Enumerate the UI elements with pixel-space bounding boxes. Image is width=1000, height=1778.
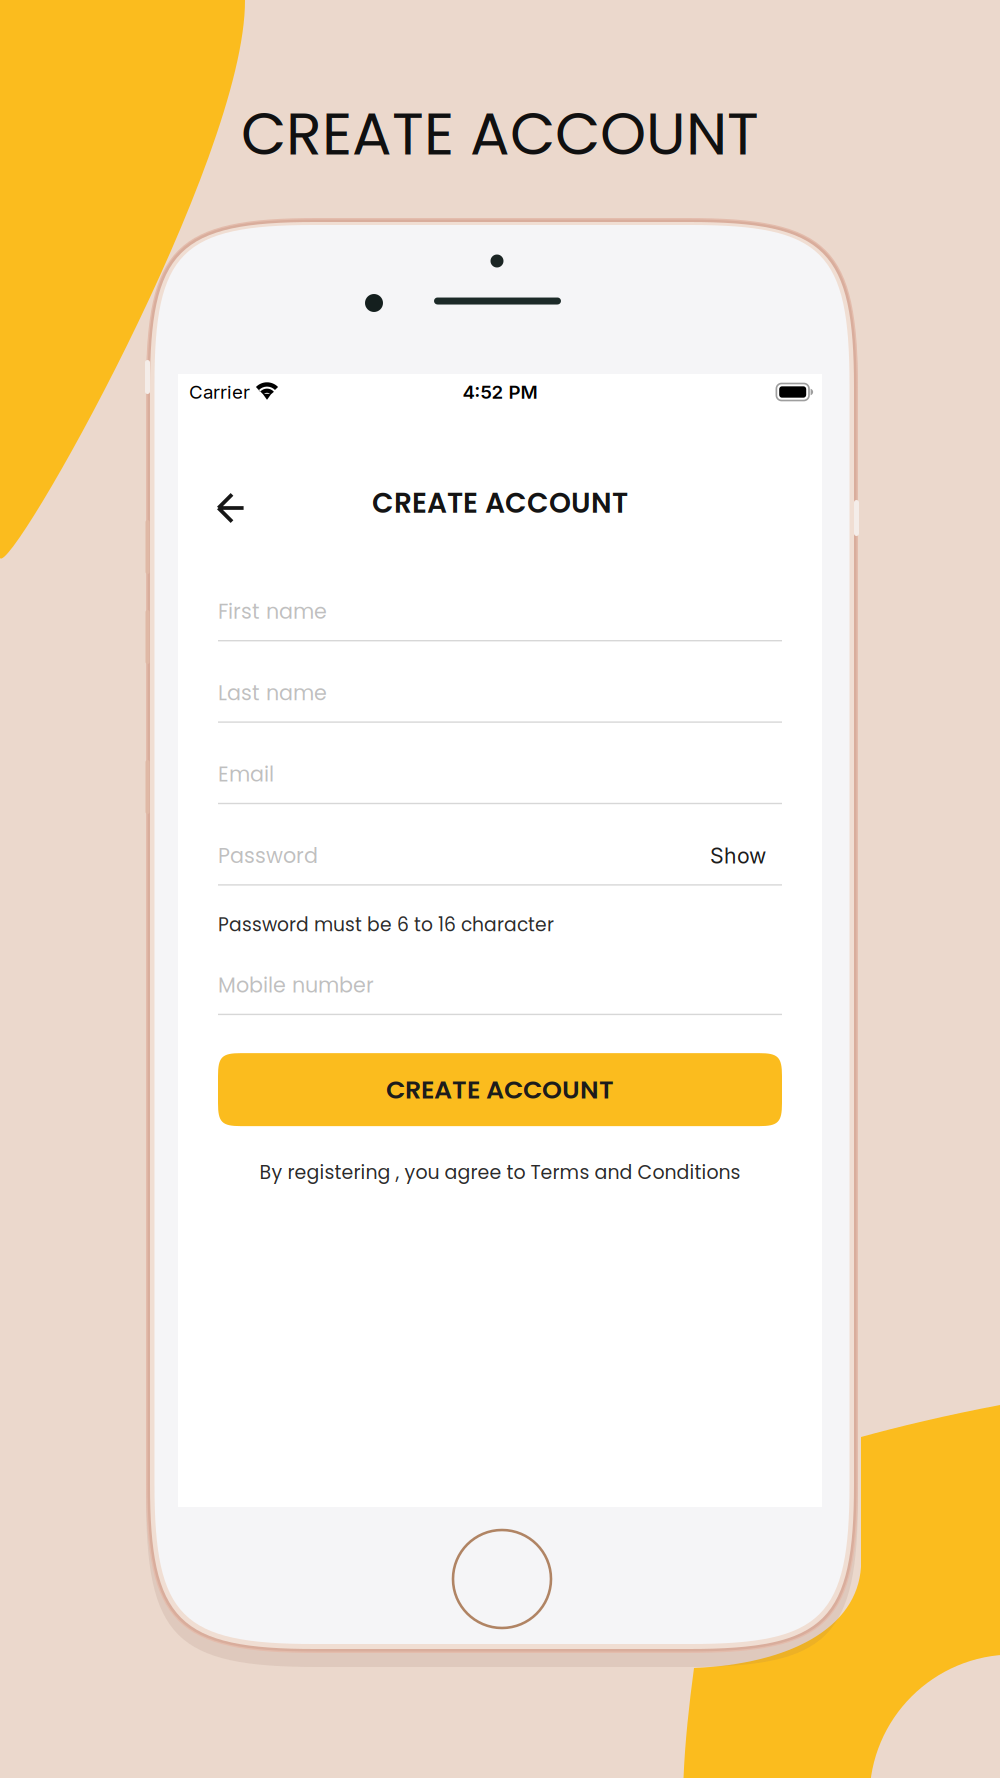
staticText: By registering , you agree to Terms and … — [259, 1159, 740, 1186]
staticText: Last name — [218, 678, 327, 707]
staticText: Email — [218, 760, 274, 789]
staticText: Password — [218, 841, 318, 870]
staticText: Password must be 6 to 16 character — [218, 912, 554, 938]
staticText: CREATE ACCOUNT — [241, 93, 759, 175]
staticText: Mobile number — [218, 971, 374, 1000]
staticText: Show — [710, 843, 766, 869]
button[interactable]: Show — [710, 843, 782, 869]
button[interactable]: By registering , you agree to Terms and … — [218, 1159, 782, 1186]
staticText: CREATE ACCOUNT — [372, 483, 628, 523]
staticText: Carrier — [189, 381, 250, 403]
button[interactable]: Back — [202, 474, 260, 532]
staticText: CREATE ACCOUNT — [386, 1072, 614, 1107]
staticText: First name — [218, 597, 327, 626]
button[interactable]: CREATE ACCOUNT — [218, 1053, 782, 1126]
staticText: 4:52 PM — [462, 381, 537, 403]
